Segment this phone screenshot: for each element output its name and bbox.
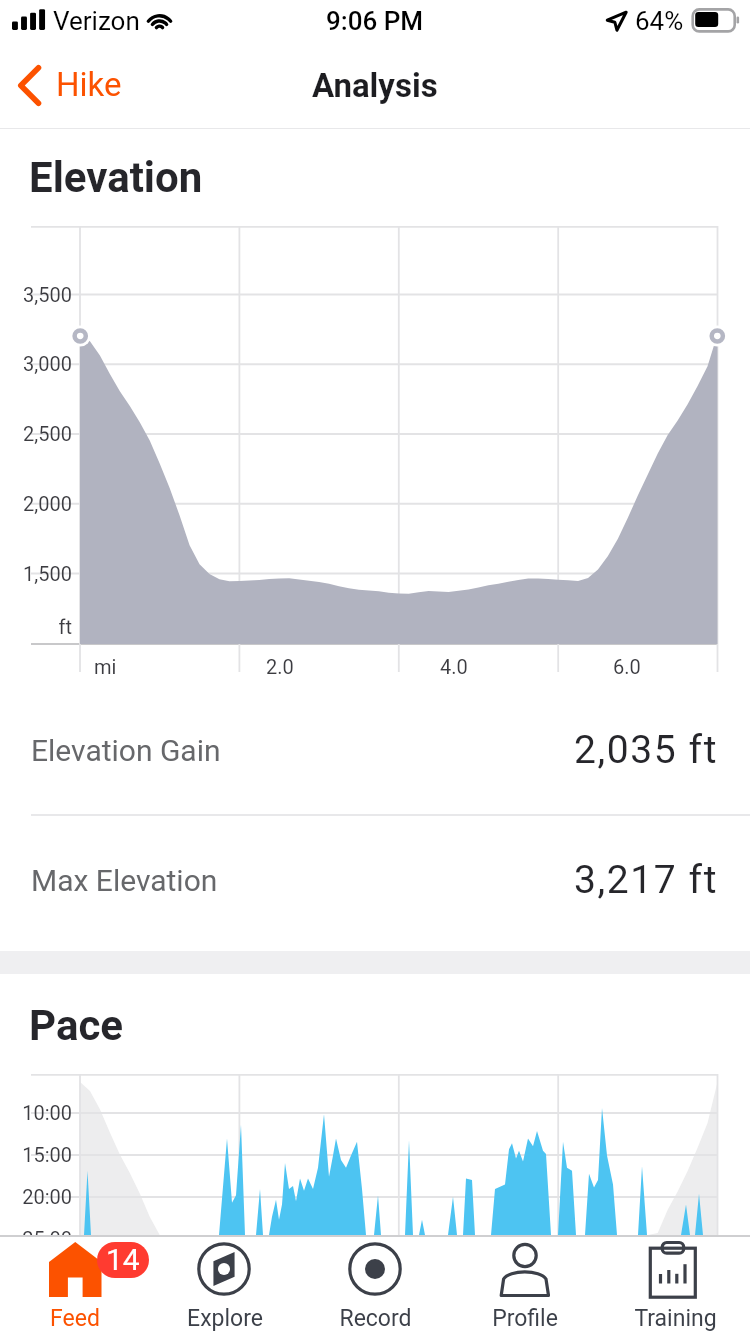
staticText: 2,000	[23, 492, 72, 515]
staticText: 6.0	[613, 655, 641, 678]
staticText: Analysis	[312, 66, 438, 105]
staticText: Max Elevation	[31, 863, 218, 898]
staticText: Hike	[56, 65, 122, 104]
staticText: 2,500	[23, 422, 72, 445]
staticText: 64%	[635, 6, 684, 36]
staticText: Pace	[29, 1001, 124, 1050]
staticText: ft	[58, 615, 72, 638]
staticText: 25:00	[22, 1227, 72, 1250]
staticText: Training	[634, 1305, 717, 1332]
staticText: Elevation Gain	[31, 733, 221, 768]
staticText: mi	[94, 655, 117, 678]
button[interactable]: Feed tab	[0, 1237, 150, 1293]
staticText: Feed	[50, 1305, 100, 1332]
staticText: 9:06 PM	[326, 6, 424, 36]
staticText: 4.0	[440, 655, 468, 678]
staticText: Record	[339, 1305, 412, 1332]
staticText: 2.0	[266, 655, 294, 678]
button[interactable]: Profile tab	[450, 1237, 600, 1293]
staticText: Elevation	[29, 153, 203, 202]
staticText: Explore	[187, 1305, 263, 1332]
staticText: 15:00	[22, 1143, 72, 1166]
button[interactable]: Elevation Gain	[0, 686, 750, 814]
button[interactable]: Max Elevation	[0, 816, 750, 944]
staticText: 20:00	[22, 1185, 72, 1208]
staticText: 2,035 ft	[574, 727, 719, 773]
button[interactable]: Explore tab	[150, 1237, 300, 1293]
staticText: 3,217 ft	[574, 857, 719, 903]
button[interactable]: Record tab	[300, 1237, 450, 1293]
staticText: 14	[106, 1242, 140, 1277]
staticText: 1,500	[23, 562, 72, 585]
staticText: Profile	[492, 1305, 558, 1332]
staticText: Verizon	[53, 6, 140, 36]
staticText: 3,000	[23, 352, 72, 375]
staticText: 3,500	[23, 283, 72, 306]
staticText: 10:00	[22, 1101, 72, 1124]
button[interactable]: Hike	[0, 59, 138, 113]
button[interactable]: Training tab	[600, 1237, 750, 1293]
